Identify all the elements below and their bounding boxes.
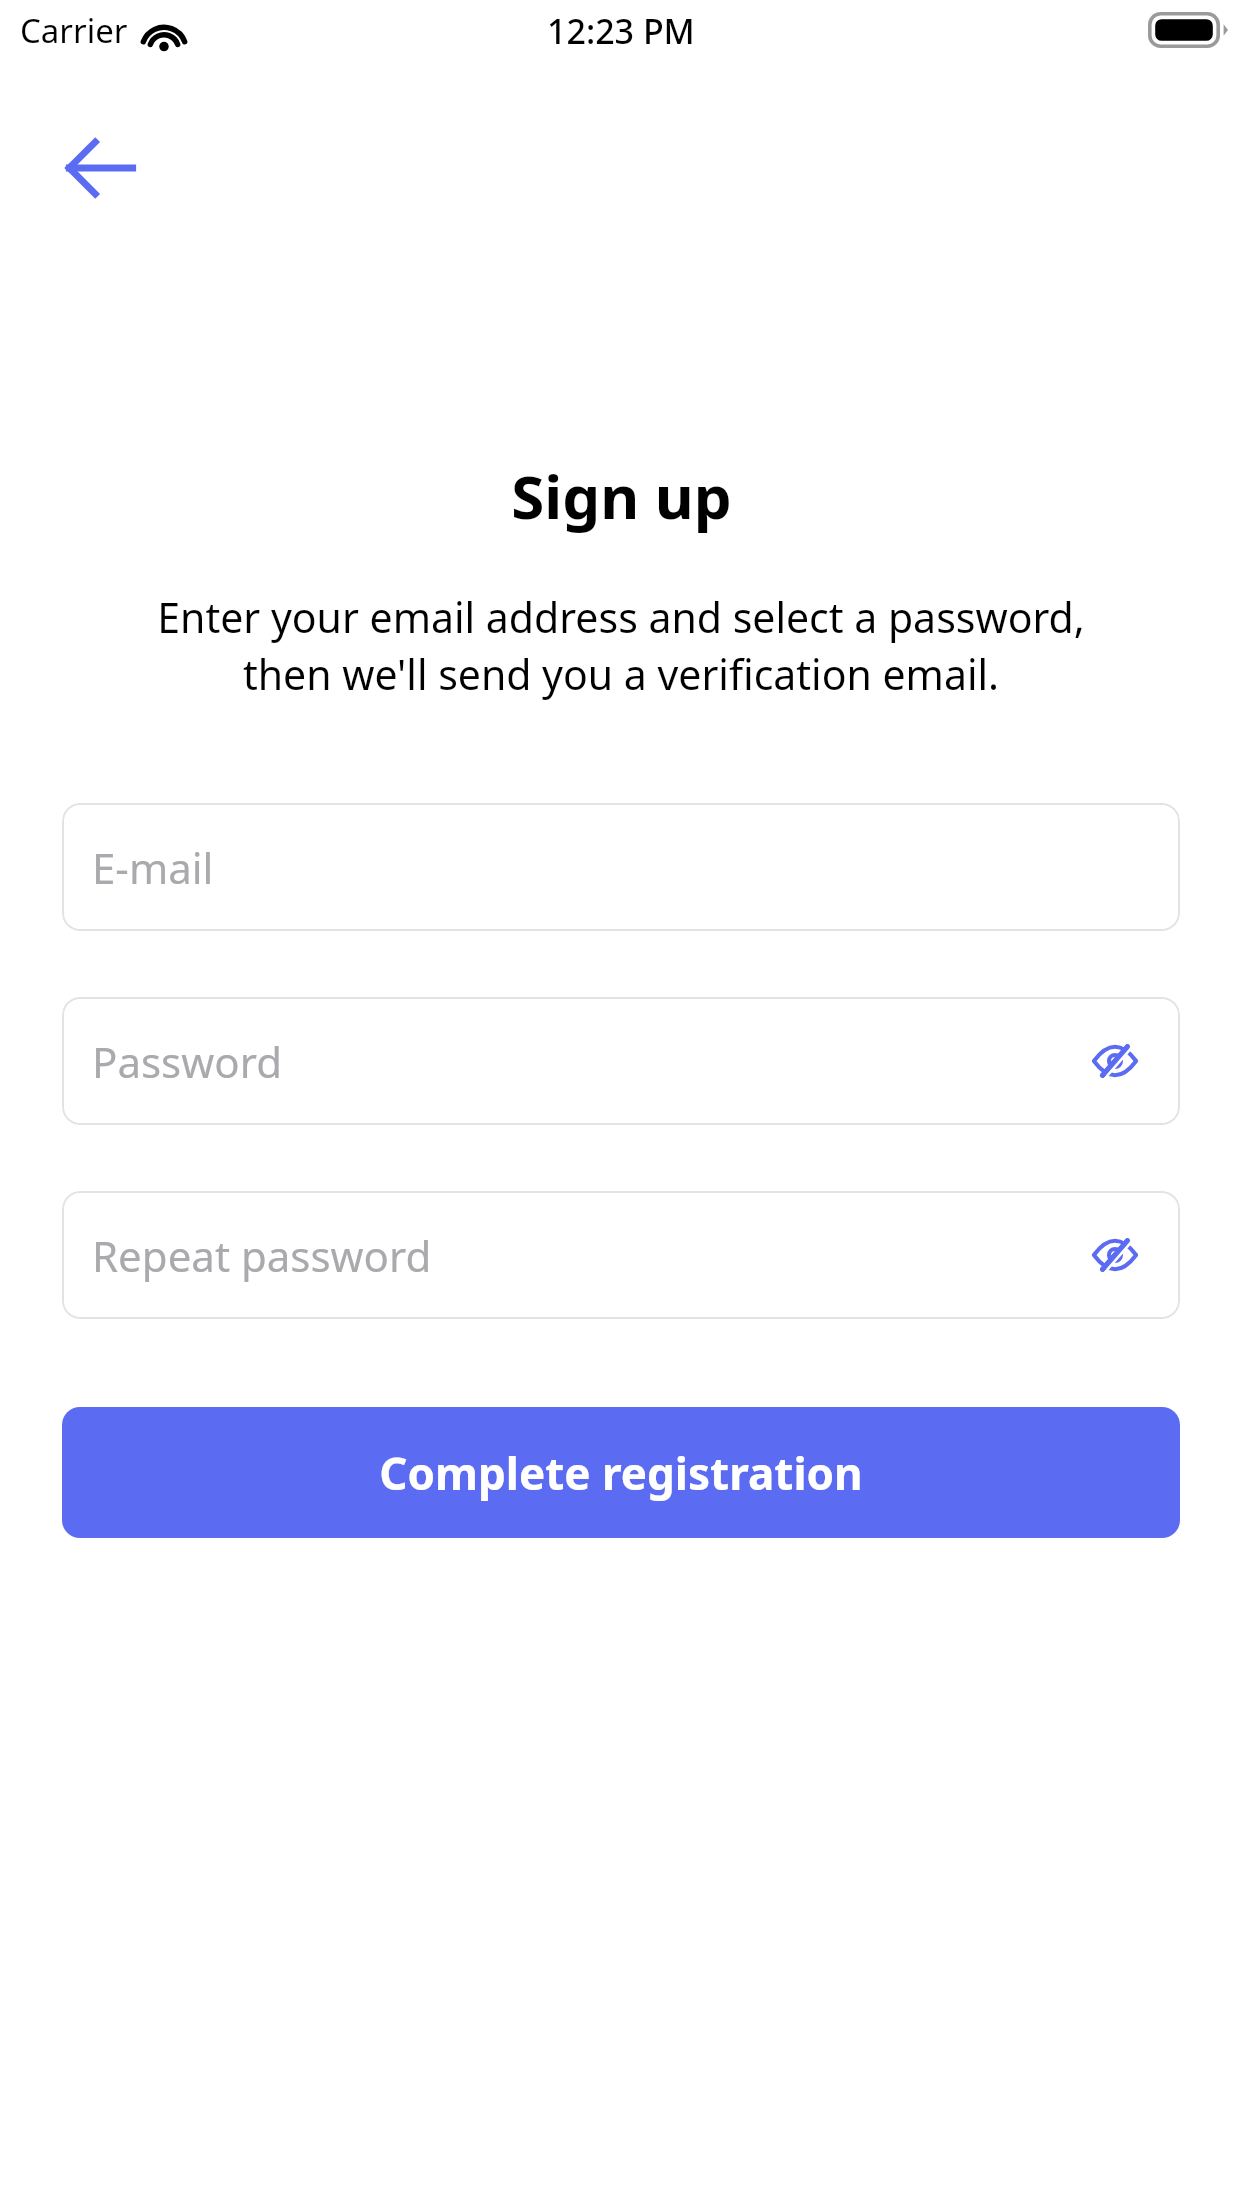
button[interactable]: Show password xyxy=(1080,1220,1150,1290)
button[interactable]: Repeat password xyxy=(62,1191,1180,1319)
staticText: 12:23 PM xyxy=(547,8,695,54)
staticText: Complete registration xyxy=(379,1443,863,1503)
button[interactable]: Password xyxy=(62,997,1180,1125)
staticText: Password xyxy=(92,1033,1080,1090)
staticText: Repeat password xyxy=(92,1227,1080,1284)
button[interactable]: E-mail xyxy=(62,803,1180,931)
button[interactable]: Complete registration xyxy=(62,1407,1180,1538)
staticText: Enter your email address and select a pa… xyxy=(40,589,1202,702)
button[interactable]: Show password xyxy=(1080,1026,1150,1096)
staticText: Sign up xyxy=(511,455,732,537)
staticText: Carrier xyxy=(20,8,128,53)
button[interactable]: Back xyxy=(45,112,157,224)
staticText: E-mail xyxy=(92,839,1150,896)
